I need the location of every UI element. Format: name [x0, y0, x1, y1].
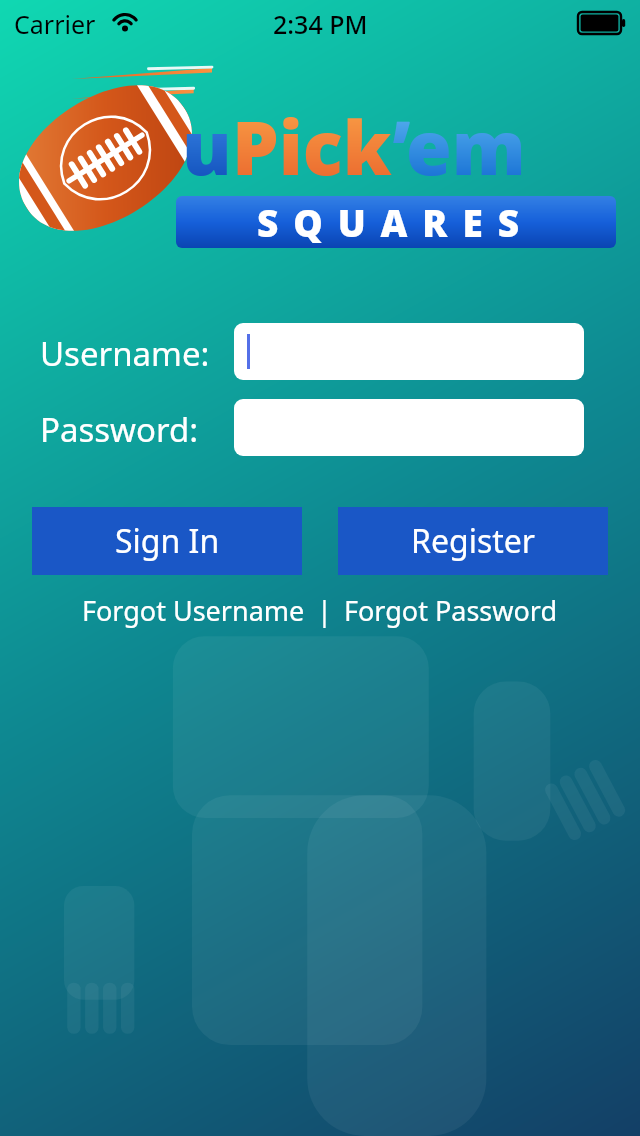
button[interactable]: Password: — [234, 399, 584, 456]
button[interactable]: Username: — [234, 323, 584, 380]
button[interactable]: Register — [338, 507, 608, 575]
staticText: Register — [411, 519, 536, 563]
staticText: Carrier — [14, 7, 96, 41]
button[interactable]: Sign In — [32, 507, 302, 575]
staticText: Pick — [232, 96, 392, 197]
staticText: SQUARES — [257, 197, 535, 247]
staticText: Username: — [40, 331, 210, 376]
button[interactable]: Forgot Username — [76, 588, 311, 633]
staticText: ’em — [392, 96, 526, 197]
staticText: 2:34 PM — [273, 7, 368, 41]
staticText: u — [182, 96, 232, 197]
staticText: | — [317, 592, 332, 629]
button[interactable]: Forgot Password — [338, 588, 564, 633]
staticText: Sign In — [115, 519, 220, 563]
staticText: Password: — [40, 407, 199, 452]
